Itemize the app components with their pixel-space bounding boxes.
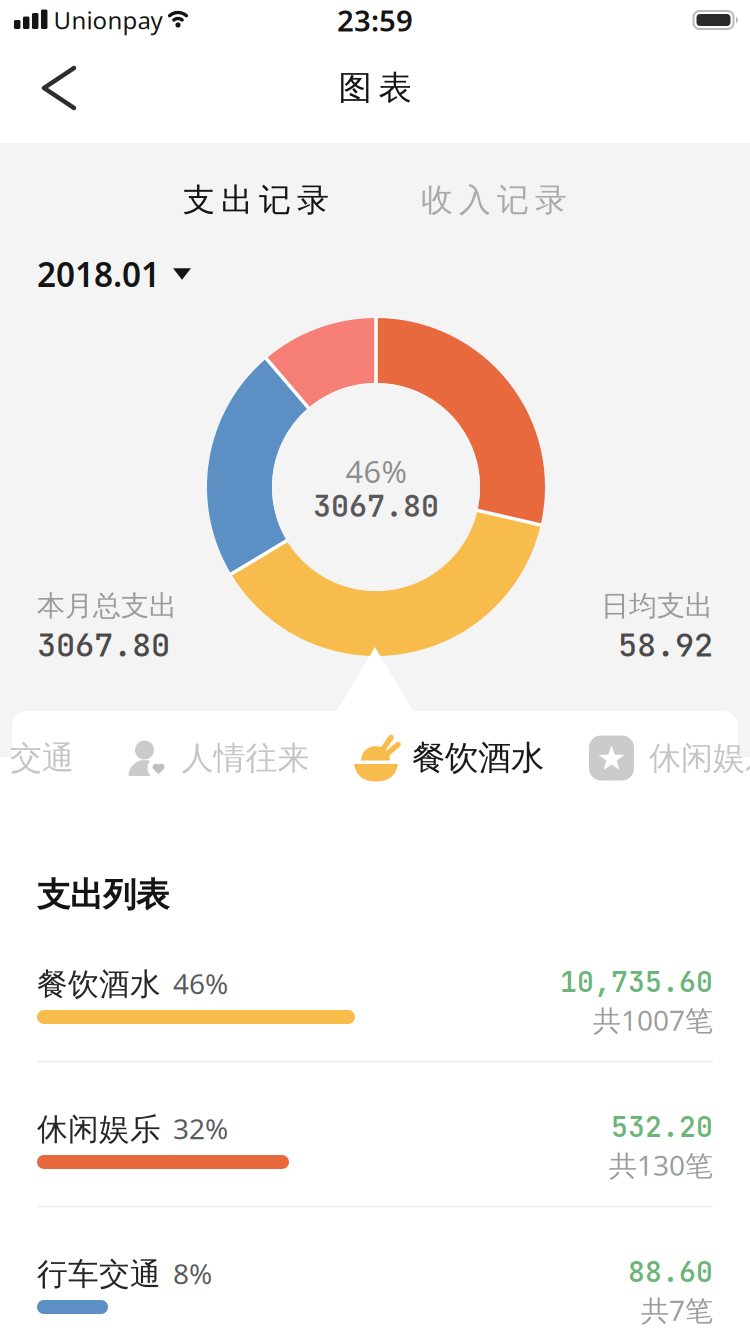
staticText: 共1007笔: [593, 1001, 713, 1039]
button[interactable]: 休闲娱乐: [0, 1062, 750, 1207]
button[interactable]: 支 出 记 录: [146, 168, 366, 232]
staticText: 共130笔: [609, 1146, 713, 1184]
staticText: 收 入 记 录: [421, 180, 567, 220]
staticText: 3067.80: [313, 486, 439, 526]
staticText: 日均支出: [601, 589, 713, 623]
staticText: 46%: [173, 965, 228, 1002]
button[interactable]: 餐饮酒水: [354, 709, 544, 807]
staticText: 88.60: [628, 1253, 713, 1290]
staticText: 休闲娱乐: [37, 1110, 161, 1148]
staticText: 2018.01: [37, 252, 160, 296]
staticText: 23:59: [337, 0, 413, 39]
staticText: 共7笔: [641, 1291, 713, 1329]
button[interactable]: Back: [27, 55, 93, 121]
button[interactable]: 2018.01: [37, 242, 191, 306]
button[interactable]: 休闲娱乐: [589, 709, 750, 807]
staticText: 32%: [173, 1110, 228, 1147]
staticText: 3067.80: [37, 624, 170, 666]
staticText: 58.92: [618, 624, 713, 666]
staticText: Unionpay: [53, 4, 162, 36]
staticText: 图 表: [338, 67, 411, 108]
staticText: 人情往来: [181, 738, 309, 778]
staticText: 交通: [10, 738, 74, 778]
button[interactable]: 行车交通: [0, 1207, 750, 1334]
staticText: 支出列表: [37, 874, 169, 915]
staticText: 8%: [173, 1255, 212, 1292]
staticText: 行车交通: [37, 1255, 161, 1293]
button[interactable]: 收 入 记 录: [384, 168, 604, 232]
button[interactable]: 人情往来: [128, 709, 309, 807]
staticText: 本月总支出: [37, 589, 177, 623]
button[interactable]: 交通: [10, 709, 74, 807]
staticText: 餐饮酒水: [412, 737, 544, 778]
staticText: 46%: [345, 451, 406, 491]
staticText: 餐饮酒水: [37, 965, 161, 1003]
staticText: 532.20: [611, 1108, 713, 1145]
staticText: 休闲娱乐: [649, 738, 750, 778]
staticText: 支 出 记 录: [183, 180, 329, 220]
button[interactable]: 餐饮酒水: [0, 917, 750, 1062]
staticText: 10,735.60: [560, 963, 713, 1000]
